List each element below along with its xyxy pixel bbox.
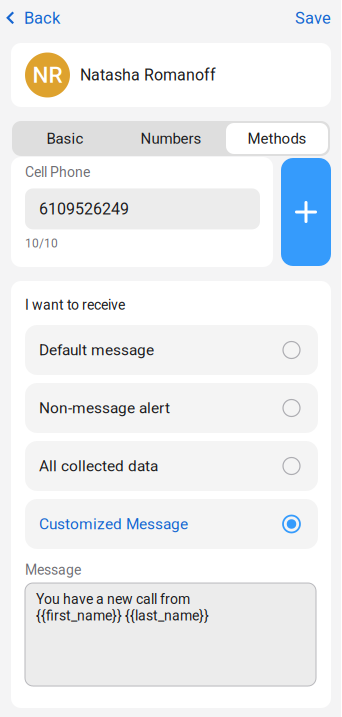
staticText: 10/10 xyxy=(25,236,58,250)
staticText: Default message xyxy=(39,341,154,359)
staticText: Numbers xyxy=(140,130,201,147)
button[interactable]: Methods xyxy=(224,121,330,156)
button[interactable]: Numbers xyxy=(118,121,224,156)
staticText: Non-message alert xyxy=(39,399,170,417)
staticText: NR xyxy=(32,62,62,88)
staticText: 6109526249 xyxy=(39,199,129,218)
staticText: Save xyxy=(295,8,331,28)
button[interactable]: Add number xyxy=(281,158,331,266)
staticText: Cell Phone xyxy=(25,164,90,180)
button[interactable]: Basic xyxy=(12,121,118,156)
button[interactable]: Non-message alert xyxy=(25,383,318,433)
button[interactable]: Save xyxy=(283,1,342,35)
staticText: Natasha Romanoff xyxy=(80,66,216,84)
staticText: Customized Message xyxy=(39,515,188,533)
staticText: Methods xyxy=(247,130,306,147)
staticText: Basic xyxy=(46,130,83,147)
staticText: Message xyxy=(25,562,81,578)
staticText: You have a new call from {{first_name}} … xyxy=(36,591,209,624)
staticText: I want to receive xyxy=(25,297,125,313)
staticText: Back xyxy=(24,8,60,28)
button[interactable]: Customized Message xyxy=(25,499,318,549)
button[interactable]: Default message xyxy=(25,325,318,375)
staticText: All collected data xyxy=(39,457,158,475)
button[interactable]: All collected data xyxy=(25,441,318,491)
button[interactable]: Back xyxy=(0,1,70,35)
